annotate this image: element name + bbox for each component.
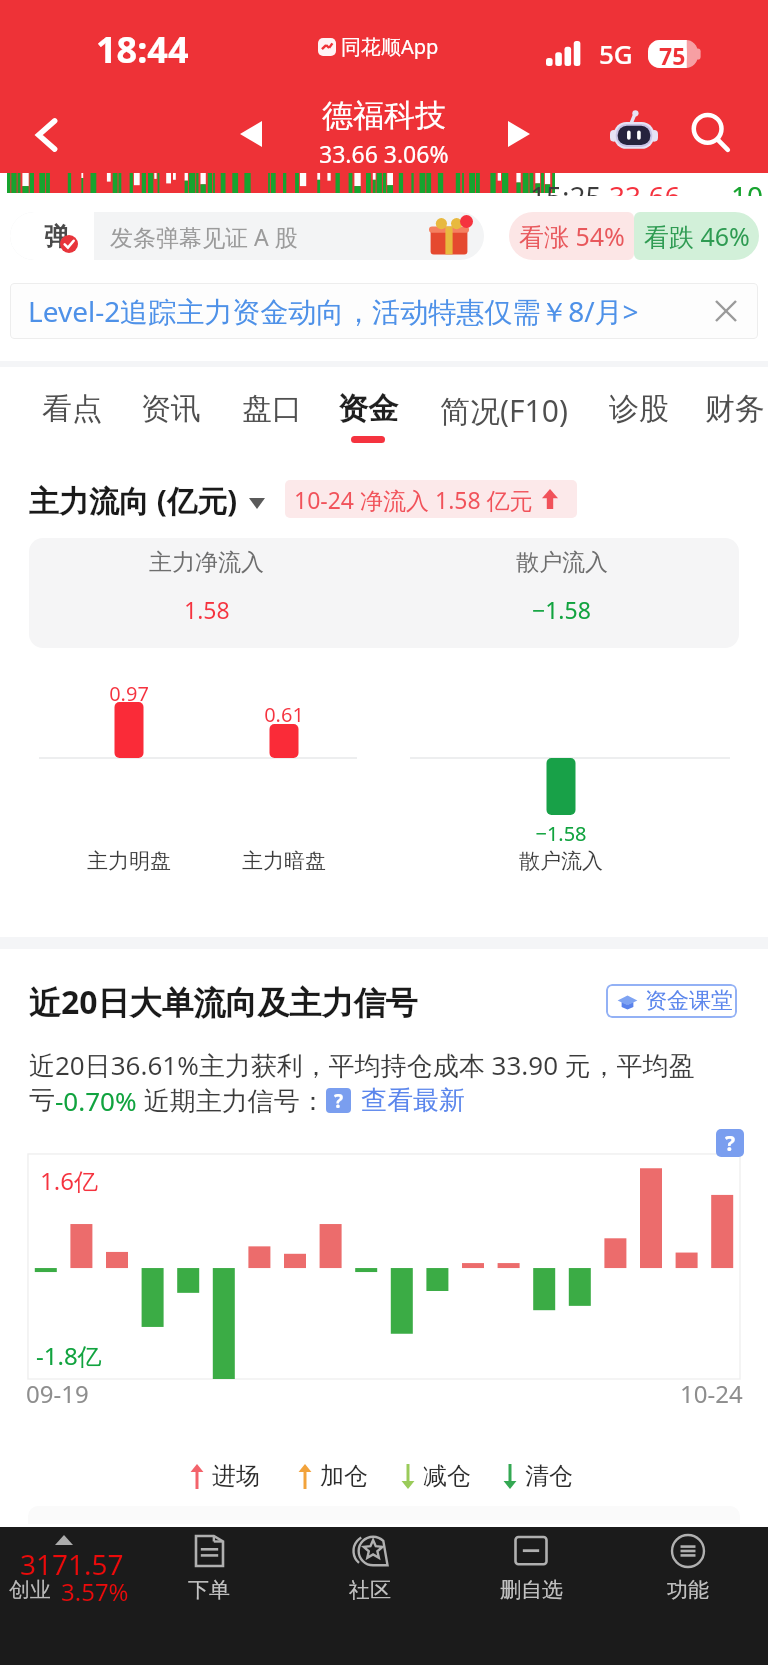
staticText: 3171.57 (20, 1545, 124, 1583)
button[interactable]: 10-24 净流入 1.58 亿元 (285, 480, 577, 518)
button[interactable]: 3171.57 (0, 1527, 168, 1665)
staticText: 同花顺App (341, 33, 439, 60)
staticText: 3.57% (61, 1575, 129, 1608)
staticText: 1.6亿 (40, 1164, 98, 1197)
button[interactable]: 减仓 (401, 1461, 471, 1491)
staticText: 看点 (42, 390, 102, 428)
staticText: 15:25 (530, 177, 602, 200)
staticText: 盘口 (242, 390, 302, 428)
staticText: 功能 (667, 1577, 709, 1603)
button[interactable]: 下单 (153, 1527, 265, 1665)
button[interactable]: 资讯 (123, 367, 219, 457)
staticText: 主力净流入 (149, 548, 264, 577)
staticText: 散户流入 (516, 548, 608, 577)
staticText: 1.58 (184, 594, 230, 625)
staticText: 德福科技 (322, 96, 446, 135)
staticText: 近20日大单流向及主力信号 (29, 980, 418, 1024)
staticText: Level-2追踪主力资金动向，活动特惠仅需￥8/月> (28, 292, 639, 330)
button[interactable]: 进场 (190, 1461, 260, 1491)
staticText: 10-24 (680, 1377, 743, 1410)
staticText: ? (334, 1088, 344, 1113)
button[interactable]: 查看最新 (361, 1084, 465, 1117)
button[interactable]: 财务 (687, 367, 768, 457)
staticText: 18:44 (96, 25, 189, 74)
button[interactable]: Next stock (490, 105, 548, 163)
button[interactable]: 资金 (320, 367, 416, 457)
staticText: 创业 (9, 1577, 51, 1603)
staticText: −1.58 (532, 594, 591, 625)
staticText: 减仓 (423, 1461, 471, 1491)
button[interactable]: 加仓 (298, 1461, 368, 1491)
staticText: 看涨 54% (519, 219, 625, 253)
button[interactable]: 清仓 (503, 1461, 573, 1491)
button[interactable]: 功能 (632, 1527, 744, 1665)
staticText: 近20日36.61%主力获利，平均持仓成本 33.90 元，平均盈 (29, 1047, 695, 1083)
staticText: −1.58 (461, 820, 661, 847)
staticText: 主力暗盘 (184, 848, 384, 874)
staticText: 资金课堂 (645, 987, 733, 1015)
staticText: 主力明盘 (29, 848, 229, 874)
staticText: -1.8亿 (36, 1339, 102, 1372)
button[interactable]: 社区 (314, 1527, 426, 1665)
button[interactable]: Back (12, 100, 82, 170)
staticText: 社区 (349, 1577, 391, 1603)
button[interactable]: Level-2追踪主力资金动向，活动特惠仅需￥8/月> (10, 283, 758, 339)
button[interactable]: 看点 (24, 367, 120, 457)
button[interactable]: Help (716, 1129, 744, 1157)
button[interactable]: Previous stock (222, 105, 280, 163)
staticText: 简况(F10) (440, 390, 568, 431)
staticText: 弹 (44, 221, 69, 252)
staticText: 09-19 (26, 1377, 89, 1410)
staticText: 加仓 (320, 1461, 368, 1491)
button[interactable]: 删自选 (475, 1527, 587, 1665)
button[interactable]: 简况(F10) (434, 367, 574, 457)
staticText: 删自选 (500, 1577, 563, 1603)
staticText: 散户流入 (461, 848, 661, 874)
staticText: 资金 (338, 390, 398, 428)
staticText: 33.66 3.06% (319, 138, 449, 169)
staticText: -0.70% (55, 1083, 137, 1118)
staticText: 近期主力信号： (137, 1082, 326, 1118)
staticText: 看跌 46% (644, 219, 750, 253)
staticText: 75 (659, 40, 686, 68)
button[interactable]: 资金课堂 (606, 984, 737, 1018)
staticText: ? (725, 1129, 736, 1157)
button[interactable]: 看跌 46% (634, 212, 759, 260)
button[interactable]: Search (679, 101, 743, 165)
staticText: 财务 (705, 390, 765, 428)
staticText: 主力流向 (亿元) (29, 480, 238, 521)
button[interactable]: 盘口 (224, 367, 320, 457)
button[interactable]: Help (326, 1088, 351, 1113)
button[interactable]: 诊股 (591, 367, 687, 457)
staticText: 0.97 (29, 680, 229, 707)
staticText: 0.61 (184, 701, 384, 728)
staticText: 下单 (188, 1577, 230, 1603)
staticText: 10-24 净流入 1.58 亿元 (294, 484, 533, 515)
staticText: 进场 (212, 1461, 260, 1491)
staticText: 清仓 (525, 1461, 573, 1491)
staticText: 33.66 (609, 177, 681, 200)
staticText: 10 (731, 177, 764, 200)
button[interactable]: Close banner (708, 293, 744, 329)
staticText: 亏 (29, 1084, 55, 1117)
staticText: 诊股 (609, 390, 669, 428)
button[interactable]: 弹 (10, 212, 484, 260)
staticText: 发条弹幕见证 A 股 (110, 221, 298, 252)
staticText: 5G (599, 36, 633, 71)
button[interactable]: AI assistant (602, 101, 666, 165)
button[interactable]: 看涨 54% (509, 212, 634, 260)
staticText: 资讯 (141, 390, 201, 428)
